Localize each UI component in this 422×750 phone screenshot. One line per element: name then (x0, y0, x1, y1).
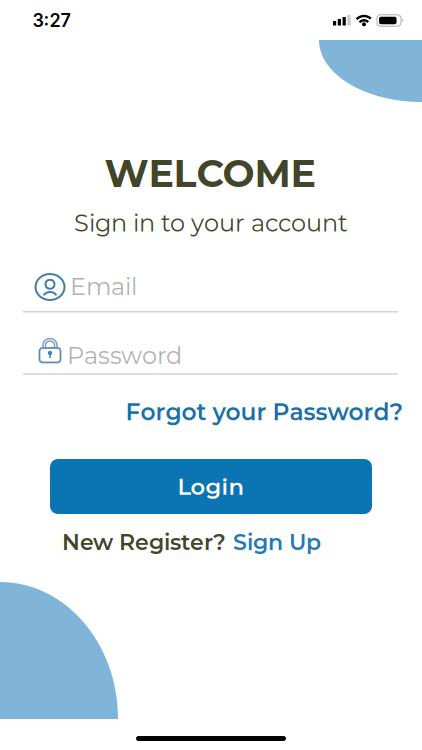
button[interactable]: Password (0, 0, 422, 750)
staticText: Password (67, 341, 182, 370)
staticText: New Register? (62, 529, 226, 555)
staticText: Login (177, 473, 244, 500)
staticText: Sign in to your account (74, 208, 348, 238)
staticText: 3:27 (32, 10, 70, 31)
staticText: Sign Up (233, 529, 321, 555)
button[interactable]: Login (50, 459, 372, 514)
staticText: Forgot your Password? (125, 398, 403, 426)
button[interactable]: Forgot your Password? (125, 398, 403, 426)
button[interactable]: Email (0, 0, 422, 750)
staticText: WELCOME (104, 150, 315, 197)
button[interactable]: Sign Up (233, 529, 321, 555)
staticText: Email (70, 272, 137, 301)
